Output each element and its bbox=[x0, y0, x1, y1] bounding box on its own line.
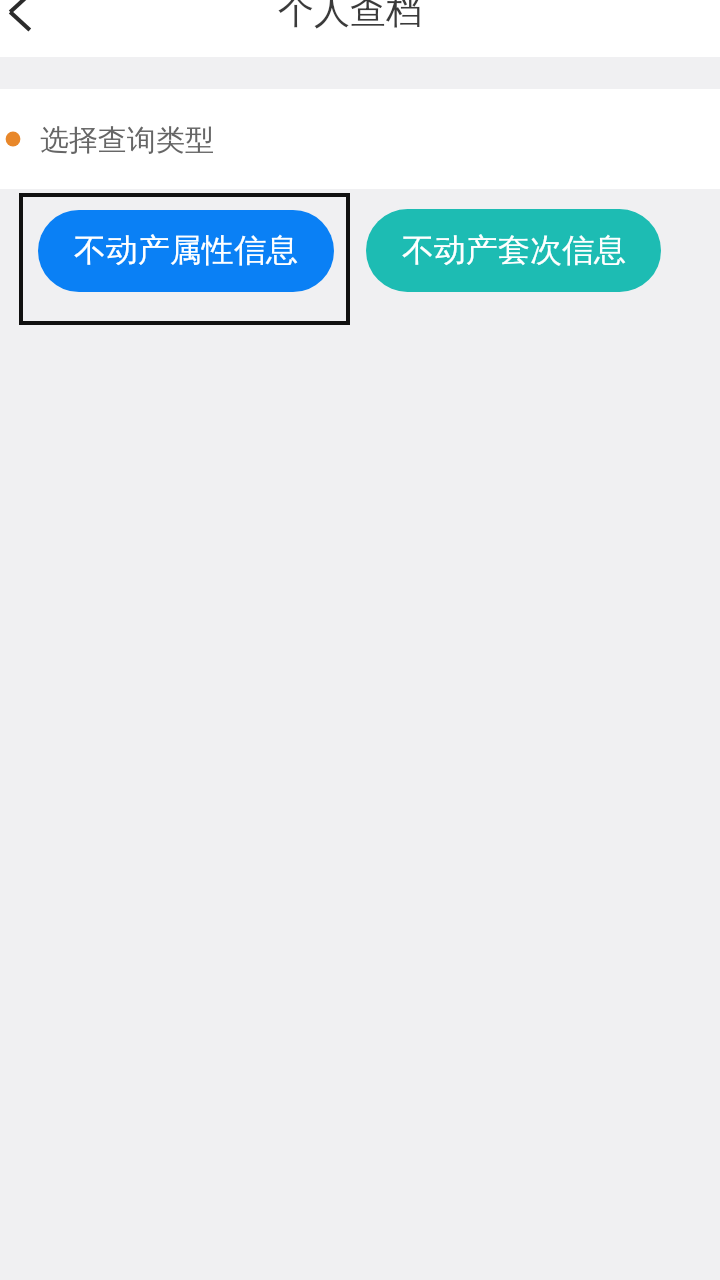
staticText: 个人查档 bbox=[278, 0, 422, 33]
button[interactable]: 不动产套次信息 bbox=[366, 209, 661, 292]
staticText: 不动产属性信息 bbox=[74, 230, 298, 270]
staticText: 不动产套次信息 bbox=[402, 230, 626, 270]
button[interactable]: Back bbox=[0, 0, 48, 40]
button[interactable]: 选择查询类型 bbox=[0, 89, 720, 189]
staticText: 选择查询类型 bbox=[40, 122, 214, 159]
button[interactable]: 不动产属性信息 bbox=[38, 210, 334, 292]
